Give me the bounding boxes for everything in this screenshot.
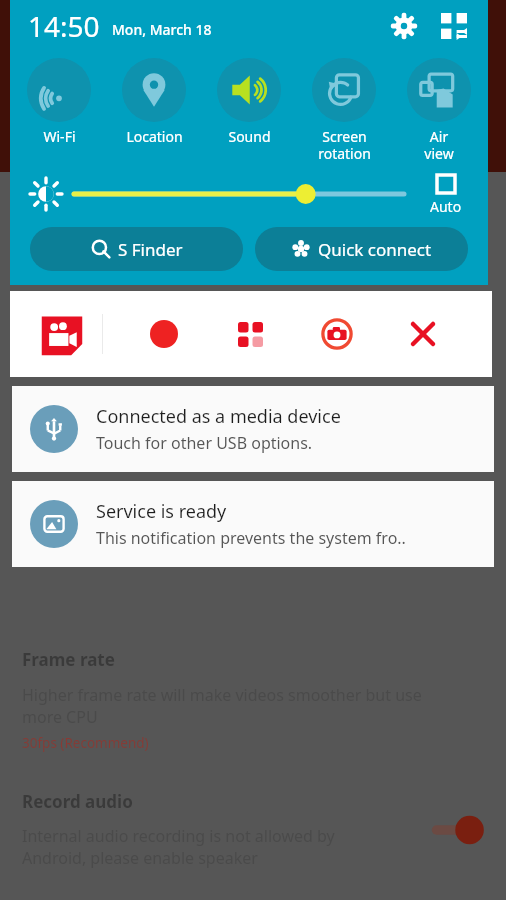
button[interactable]: Connected as a media device xyxy=(12,386,494,472)
button[interactable]: Settings xyxy=(384,6,424,46)
button[interactable]: Air view xyxy=(393,56,485,163)
staticText: Auto xyxy=(430,197,462,216)
staticText: Connected as a media device xyxy=(96,404,341,429)
staticText: 14:50 xyxy=(28,7,100,45)
button[interactable]: Screen rotation xyxy=(298,56,390,163)
staticText: Internal audio recording is not allowed … xyxy=(22,825,335,847)
staticText: Touch for other USB options. xyxy=(96,432,313,454)
staticText: 30fps (Recommend) xyxy=(22,734,149,752)
staticText: Screen rotation xyxy=(318,127,371,163)
button[interactable]: Auto xyxy=(418,173,474,216)
button[interactable]: Screenshot xyxy=(312,309,362,359)
button[interactable]: S Finder xyxy=(30,227,243,271)
button[interactable] xyxy=(68,174,410,214)
staticText: Location xyxy=(126,127,183,146)
staticText: Record audio xyxy=(22,790,133,813)
button[interactable]: Edit quick settings xyxy=(434,6,474,46)
staticText: more CPU xyxy=(22,706,98,728)
staticText: Air view xyxy=(424,127,454,163)
staticText: Sound xyxy=(228,127,271,146)
staticText: Service is ready xyxy=(96,499,227,524)
button[interactable]: Record xyxy=(139,309,189,359)
staticText: S Finder xyxy=(118,238,183,261)
button[interactable]: Recorder app xyxy=(38,310,86,358)
button[interactable]: Wi-Fi xyxy=(13,56,105,146)
button[interactable]: Close xyxy=(398,309,448,359)
staticText: Quick connect xyxy=(318,238,432,261)
button[interactable]: Quick connect xyxy=(255,227,468,271)
button[interactable]: Location xyxy=(108,56,200,146)
staticText: Wi-Fi xyxy=(43,127,76,146)
staticText: Android, please enable speaker xyxy=(22,847,258,869)
staticText: Frame rate xyxy=(22,648,115,671)
button[interactable] xyxy=(428,813,490,847)
button[interactable]: Sound xyxy=(203,56,295,146)
staticText: Mon, March 18 xyxy=(112,20,212,39)
button[interactable]: Service is ready xyxy=(12,481,494,567)
button[interactable]: Widgets xyxy=(225,309,275,359)
staticText: This notification prevents the system fr… xyxy=(96,527,406,549)
staticText: Higher frame rate will make videos smoot… xyxy=(22,684,422,706)
